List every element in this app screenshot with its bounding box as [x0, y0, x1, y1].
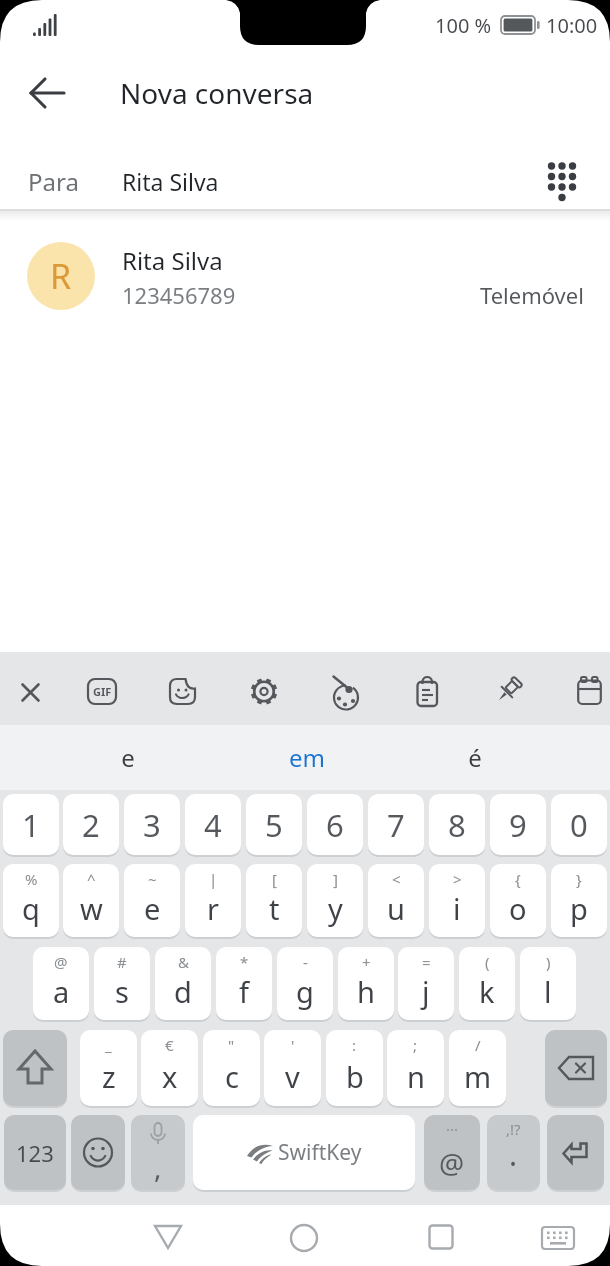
staticText: Telemóvel [480, 280, 584, 310]
staticText: q [22, 889, 40, 928]
staticText: 10:00 [546, 12, 598, 39]
staticText: w [80, 889, 103, 928]
staticText: ] [333, 869, 338, 889]
staticText: 5 [265, 804, 283, 846]
staticText: " [228, 1035, 235, 1055]
staticText: 100 % [435, 12, 492, 39]
staticText: 2 [82, 804, 100, 846]
staticText: p [570, 889, 588, 928]
staticText: u [387, 889, 405, 928]
staticText: i [453, 889, 461, 928]
staticText: , [154, 1148, 162, 1186]
staticText: e [121, 741, 135, 774]
staticText: < [392, 869, 401, 889]
staticText: r [207, 889, 219, 928]
staticText: z [102, 1057, 116, 1096]
staticText: € [165, 1035, 174, 1055]
staticText: _ [105, 1035, 112, 1055]
staticText: 1 [22, 804, 40, 846]
staticText: @ [54, 952, 68, 972]
staticText: - [303, 952, 308, 972]
staticText: y [328, 889, 343, 928]
staticText: l [544, 972, 552, 1011]
staticText: n [407, 1057, 425, 1096]
staticText: SwiftKey [278, 1138, 362, 1167]
staticText: * [240, 952, 249, 972]
staticText: k [479, 972, 495, 1011]
staticText: ' [291, 1035, 295, 1055]
staticText: 3 [143, 804, 161, 846]
staticText: ~ [148, 869, 157, 889]
staticText: % [25, 869, 38, 889]
staticText: > [453, 869, 462, 889]
staticText: : [352, 1035, 357, 1055]
staticText: o [509, 889, 527, 928]
staticText: ( [485, 952, 490, 972]
staticText: v [285, 1057, 300, 1096]
staticText: @ [439, 1144, 465, 1182]
staticText: 8 [448, 804, 466, 846]
staticText: + [362, 952, 371, 972]
staticText: x [162, 1057, 178, 1096]
staticText: s [115, 972, 129, 1011]
staticText: ; [413, 1035, 418, 1055]
staticText: # [117, 952, 127, 972]
staticText: m [464, 1057, 492, 1096]
staticText: c [225, 1057, 239, 1096]
staticText: t [269, 889, 280, 928]
staticText: = [422, 952, 431, 972]
staticText: / [475, 1035, 481, 1055]
staticText: d [174, 972, 192, 1011]
staticText: Rita Silva [122, 244, 223, 277]
staticText: é [468, 741, 482, 774]
staticText: f [239, 972, 249, 1011]
staticText: ^ [87, 869, 96, 889]
staticText: j [422, 972, 430, 1011]
staticText: h [357, 972, 375, 1011]
staticText: 123 [16, 1138, 54, 1168]
staticText: & [178, 952, 189, 972]
staticText: e [144, 889, 161, 928]
staticText: ) [546, 952, 551, 972]
staticText: [ [272, 869, 277, 889]
staticText: R [50, 253, 72, 299]
staticText: b [346, 1057, 364, 1096]
staticText: } [576, 869, 582, 889]
staticText: 7 [387, 804, 405, 846]
staticText: 6 [326, 804, 344, 846]
staticText: GIF [93, 684, 112, 699]
staticText: Para [28, 165, 79, 198]
staticText: a [53, 972, 70, 1011]
staticText: { [515, 869, 521, 889]
staticText: 123456789 [122, 280, 236, 310]
staticText: Nova conversa [120, 74, 314, 112]
staticText: ... [446, 1115, 459, 1135]
staticText: | [209, 869, 218, 889]
staticText: 0 [570, 804, 588, 846]
staticText: . [509, 1134, 518, 1175]
staticText: 9 [509, 804, 527, 846]
staticText: Rita Silva [122, 166, 219, 197]
staticText: g [296, 972, 314, 1011]
staticText: ,!? [506, 1119, 521, 1139]
staticText: 4 [204, 804, 222, 846]
staticText: em [289, 741, 325, 774]
